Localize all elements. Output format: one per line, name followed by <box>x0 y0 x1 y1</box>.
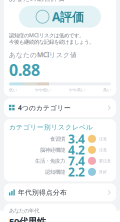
staticText: 注意 <box>99 147 107 152</box>
staticText: 年代別得点分布 <box>18 188 67 197</box>
staticText: 7.4 <box>68 153 85 169</box>
staticText: 3.4 <box>68 131 85 147</box>
staticText: 注意 <box>99 136 107 141</box>
staticText: 良好 <box>99 169 107 174</box>
button[interactable]: 4つのカテゴリー <box>4 98 116 117</box>
staticText: あなたの年代 <box>9 208 39 214</box>
staticText: 0.88 <box>9 59 40 80</box>
staticText: やや低い <box>35 87 51 92</box>
staticText: 2.2 <box>68 164 85 180</box>
staticText: 4つのカテゴリー <box>18 103 71 112</box>
staticText: 認知症のMCIリスクは低めです。 今後も継続的な記録を続けましょう。 <box>9 32 94 45</box>
staticText: 4.2 <box>68 142 85 158</box>
staticText: 要注意 <box>99 158 111 163</box>
staticText: 脳神経機能 <box>40 147 65 153</box>
staticText: やや高い <box>69 87 85 92</box>
button[interactable]: 年代別得点分布 <box>4 183 116 202</box>
staticText: 高い <box>103 87 111 92</box>
staticText: A評価 <box>52 9 84 25</box>
staticText: 低い <box>9 87 17 92</box>
staticText: カテゴリー別リスクレベル <box>9 123 93 131</box>
staticText: あなたのMCIリスク値 <box>9 50 77 59</box>
staticText: 生活・免疫力 <box>35 158 65 164</box>
staticText: 認知機能 <box>45 169 65 175</box>
staticText: あなたの総合評価 <box>9 0 65 3</box>
staticText: 50代男性 <box>9 215 46 222</box>
staticText: 食習慣 <box>50 136 65 142</box>
